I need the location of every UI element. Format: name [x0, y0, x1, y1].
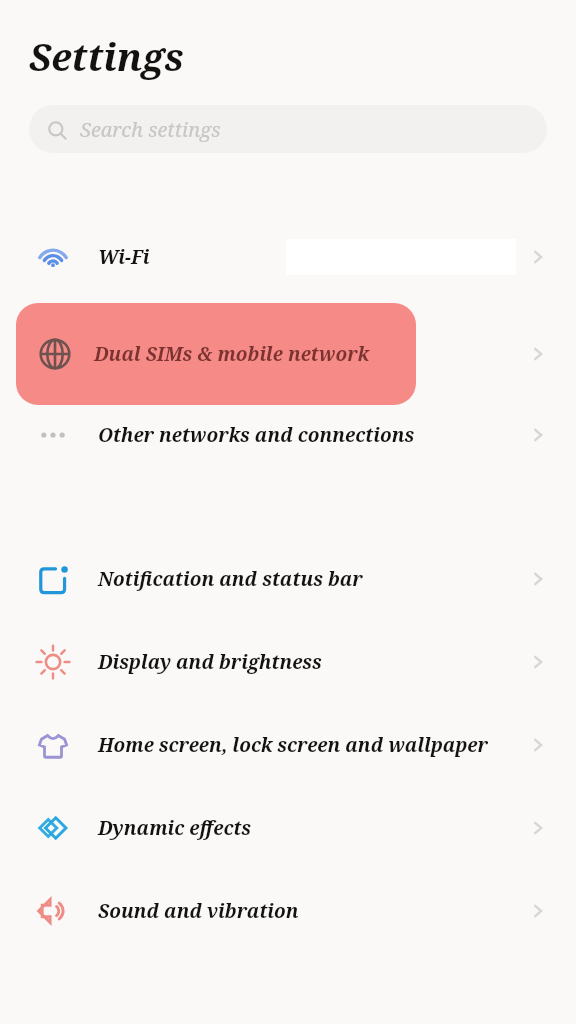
button[interactable]: Dual SIMs & mobile network [16, 303, 416, 405]
staticText: Dynamic effects [98, 815, 528, 841]
staticText: Other networks and connections [98, 422, 528, 448]
button[interactable]: Dynamic effects [0, 786, 576, 869]
button[interactable]: Sound and vibration [0, 869, 576, 952]
button[interactable]: Search settings [29, 105, 547, 153]
staticText: Sound and vibration [98, 898, 528, 924]
button[interactable]: Notification and status bar [0, 537, 576, 620]
staticText: Search settings [80, 116, 221, 143]
staticText: Notification and status bar [98, 566, 528, 592]
staticText: Wi-Fi [98, 244, 528, 270]
button[interactable]: Display and brightness [0, 620, 576, 703]
button[interactable]: Wi-Fi [0, 229, 576, 285]
staticText: Settings [29, 30, 184, 82]
staticText: Dual SIMs & mobile network [94, 341, 369, 367]
button[interactable]: Home screen, lock screen and wallpaper [0, 703, 576, 786]
staticText: Home screen, lock screen and wallpaper [98, 732, 528, 758]
button[interactable]: Other networks and connections [0, 405, 576, 465]
staticText: Display and brightness [98, 649, 528, 675]
